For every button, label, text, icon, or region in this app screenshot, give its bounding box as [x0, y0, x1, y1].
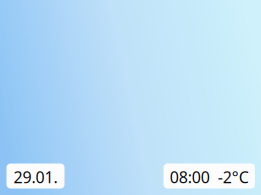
staticText: 29.01. [13, 166, 57, 188]
button[interactable]: 29.01. [6, 163, 64, 188]
staticText: -2°C [218, 166, 249, 188]
button[interactable]: 08:00 [163, 163, 255, 188]
staticText: 08:00 [170, 166, 210, 188]
